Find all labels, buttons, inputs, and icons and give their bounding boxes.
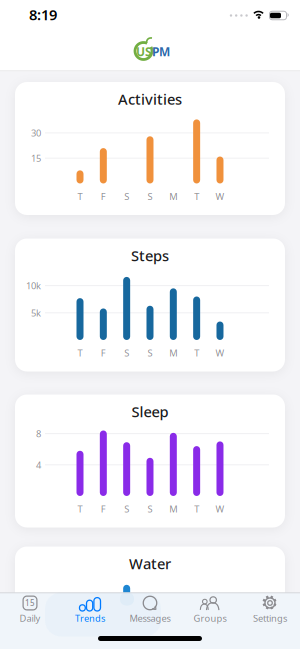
staticText: 10k: [26, 279, 41, 292]
staticText: Sleep: [131, 402, 168, 421]
staticText: 8:19: [29, 5, 57, 24]
staticText: US: [136, 43, 152, 59]
staticText: S: [147, 503, 152, 515]
staticText: 3: [36, 618, 41, 630]
button[interactable]: Groups: [180, 595, 240, 635]
staticText: T: [194, 503, 199, 515]
staticText: F: [101, 190, 106, 203]
staticText: M: [169, 190, 177, 203]
staticText: M: [169, 347, 177, 359]
staticText: 30: [31, 127, 41, 139]
staticText: T: [194, 347, 199, 359]
button[interactable]: Messages: [120, 595, 180, 635]
staticText: S: [124, 503, 129, 515]
staticText: 6: [36, 594, 41, 607]
staticText: Trends: [75, 612, 105, 624]
button[interactable]: Settings: [240, 595, 300, 635]
staticText: Settings: [253, 612, 287, 624]
staticText: F: [101, 503, 106, 515]
staticText: S: [124, 190, 129, 203]
staticText: Daily: [19, 612, 40, 624]
staticText: 5k: [31, 307, 41, 319]
staticText: Water: [129, 554, 171, 573]
staticText: Messages: [129, 612, 170, 624]
staticText: 15: [25, 598, 35, 608]
staticText: T: [77, 190, 82, 203]
button[interactable]: Trends: [60, 595, 120, 635]
staticText: W: [215, 347, 224, 359]
staticText: T: [77, 503, 82, 515]
staticText: 4: [36, 459, 41, 471]
staticText: S: [147, 347, 152, 359]
staticText: W: [215, 503, 224, 515]
staticText: S: [124, 347, 129, 359]
staticText: T: [77, 347, 82, 359]
staticText: Steps: [131, 246, 169, 265]
staticText: W: [215, 190, 224, 203]
staticText: 15: [31, 152, 41, 164]
staticText: Activities: [118, 89, 182, 109]
button[interactable]: 15: [0, 595, 60, 635]
staticText: T: [194, 190, 199, 203]
staticText: S: [147, 190, 152, 203]
staticText: M: [169, 503, 177, 515]
staticText: PM: [152, 43, 170, 59]
staticText: F: [101, 347, 106, 359]
staticText: Groups: [193, 612, 226, 624]
staticText: 8: [36, 427, 41, 440]
